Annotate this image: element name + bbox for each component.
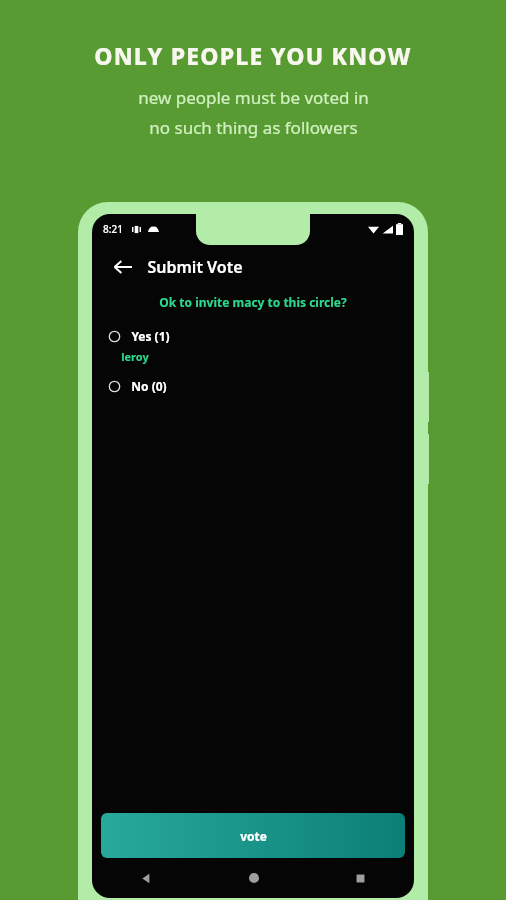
- staticText: leroy: [121, 349, 149, 364]
- button[interactable]: Recent apps: [307, 858, 414, 898]
- button[interactable]: Yes (1): [92, 325, 414, 347]
- staticText: Yes (1): [131, 328, 170, 344]
- staticText: Submit Vote: [147, 256, 243, 278]
- button[interactable]: Back: [106, 250, 140, 284]
- button[interactable]: vote: [101, 813, 405, 858]
- staticText: vote: [240, 828, 267, 844]
- staticText: No (0): [131, 378, 167, 394]
- staticText: Ok to invite macy to this circle?: [159, 294, 347, 310]
- staticText: no such thing as followers: [149, 116, 358, 139]
- staticText: 8:21: [103, 222, 123, 236]
- staticText: ONLY PEOPLE YOU KNOW: [94, 40, 412, 71]
- staticText: new people must be voted in: [138, 86, 369, 109]
- button[interactable]: No (0): [92, 375, 414, 397]
- button[interactable]: Back: [92, 858, 200, 898]
- button[interactable]: Home: [200, 858, 307, 898]
